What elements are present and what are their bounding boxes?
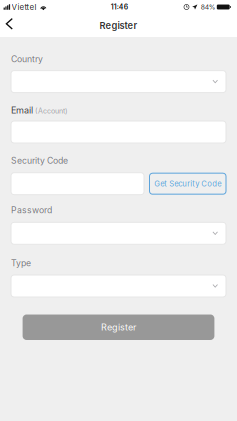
button[interactable]: Back [0, 14, 27, 37]
staticText: Type [11, 258, 31, 268]
staticText: 84% [201, 3, 216, 11]
staticText: Register [101, 322, 136, 333]
staticText: Password [11, 205, 52, 215]
staticText: 11:46 [111, 3, 128, 11]
button[interactable] [11, 275, 226, 297]
button[interactable]: Register [23, 314, 214, 340]
staticText: Viettel [12, 2, 37, 12]
staticText: Get Security Code [154, 179, 221, 188]
button[interactable] [11, 222, 226, 244]
staticText: Security Code [11, 155, 68, 166]
button[interactable]: Get Security Code [149, 173, 226, 194]
button[interactable] [11, 71, 226, 93]
staticText: Country [11, 54, 43, 64]
staticText: (Account) [35, 106, 68, 115]
staticText: Register [99, 20, 137, 31]
staticText: Email [11, 105, 33, 116]
